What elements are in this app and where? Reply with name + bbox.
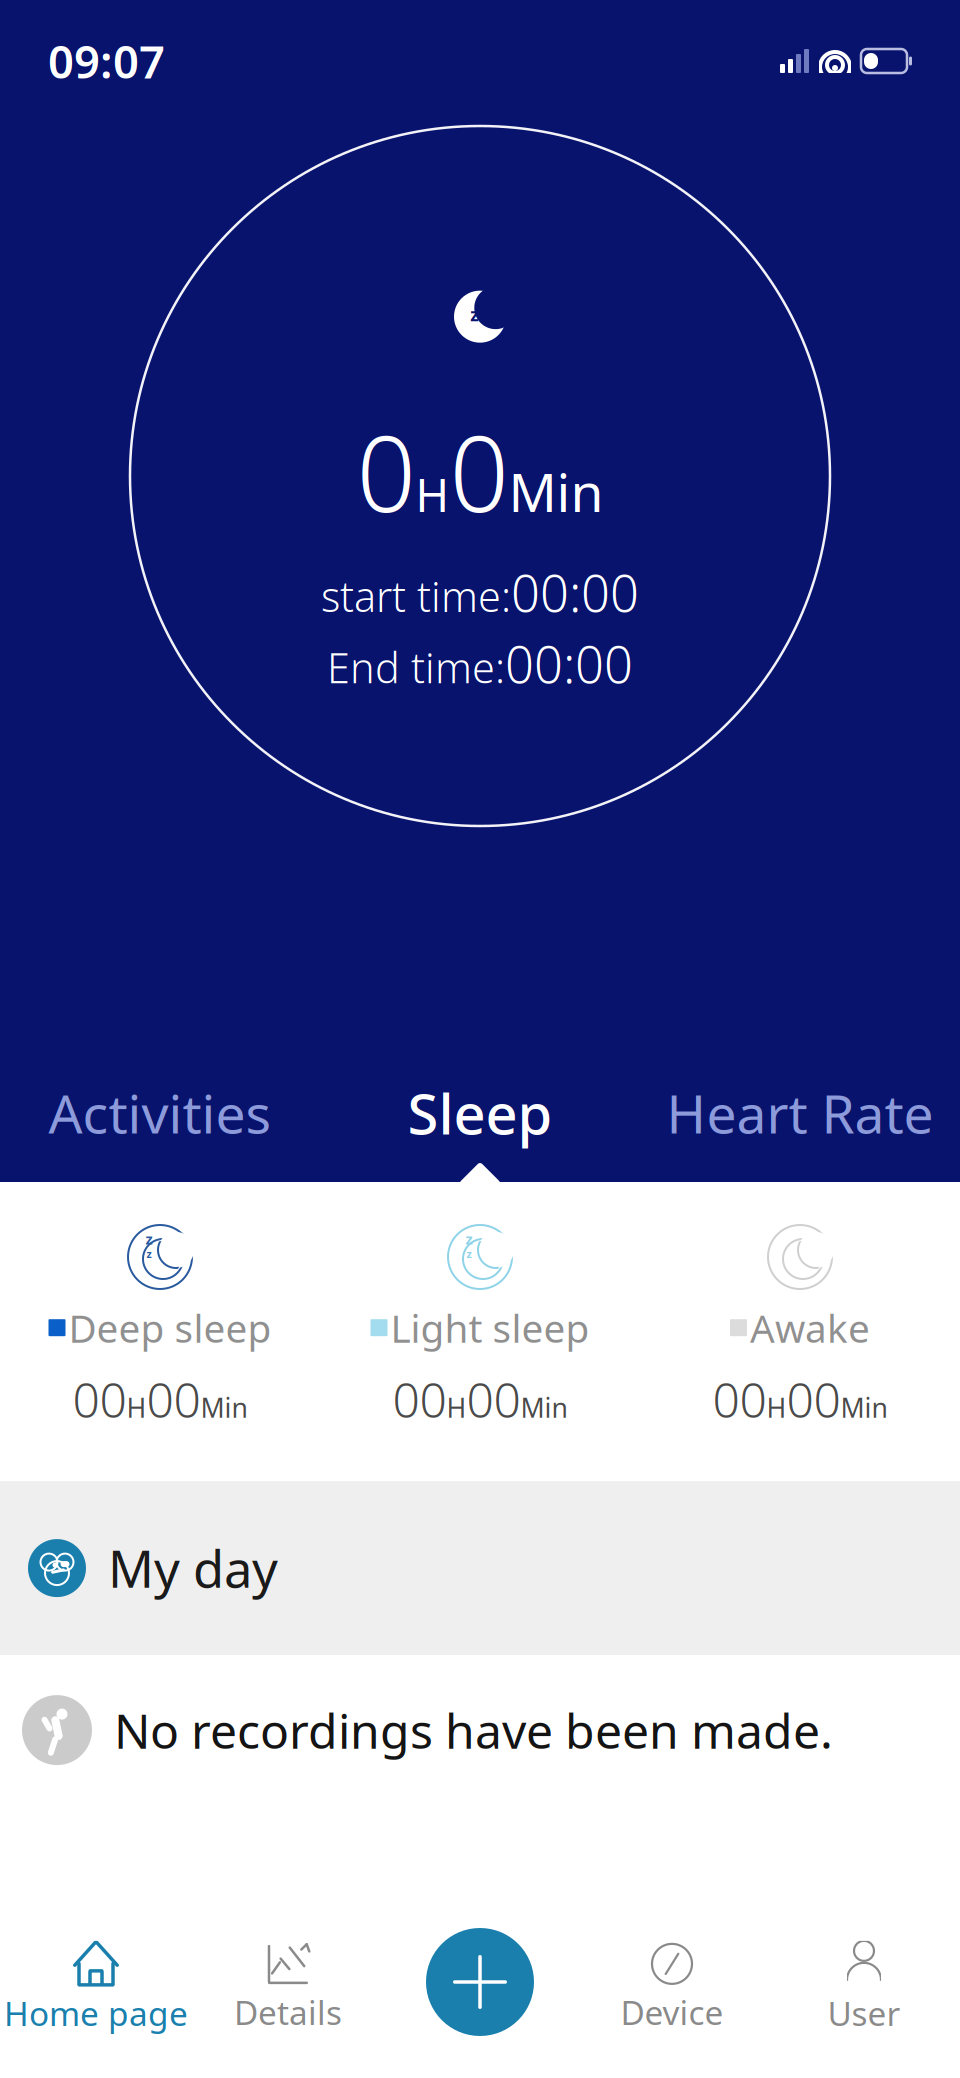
staticText: User xyxy=(827,1991,900,2035)
staticText: 00 xyxy=(72,1367,126,1431)
staticText: Min xyxy=(840,1390,887,1425)
staticText: z xyxy=(466,1247,471,1261)
button[interactable]: User xyxy=(768,1935,960,2041)
staticText: z xyxy=(145,1229,152,1249)
staticText: 00 xyxy=(786,1367,840,1431)
staticText: 00 xyxy=(466,1367,520,1431)
button[interactable]: Details xyxy=(192,1936,384,2040)
staticText: z xyxy=(470,303,479,326)
staticText: H xyxy=(415,464,449,525)
staticText: Details xyxy=(234,1990,342,2034)
staticText: 0 xyxy=(449,403,508,541)
staticText: End time: xyxy=(327,640,505,695)
staticText: start time: xyxy=(321,569,511,623)
button[interactable]: No recordings have been made. xyxy=(0,1655,960,1805)
button[interactable]: Heart Rate xyxy=(640,1067,960,1158)
staticText: No recordings have been made. xyxy=(114,1698,833,1762)
staticText: H xyxy=(766,1390,786,1425)
staticText: Activities xyxy=(48,1077,271,1148)
staticText: 0 xyxy=(356,403,415,541)
staticText: Heart Rate xyxy=(666,1077,933,1148)
staticText: z xyxy=(465,1229,472,1249)
staticText: 00 xyxy=(712,1367,766,1431)
staticText: 00:00 xyxy=(511,559,639,626)
staticText: Min xyxy=(200,1390,247,1425)
staticText: 00:00 xyxy=(505,630,633,697)
button[interactable]: Home page xyxy=(0,1935,192,2041)
button[interactable]: Activities xyxy=(0,1067,320,1158)
staticText: z xyxy=(146,1247,151,1261)
staticText: H xyxy=(446,1390,466,1425)
staticText: 09:07 xyxy=(48,31,165,91)
staticText: Device xyxy=(620,1990,723,2034)
button[interactable]: Add xyxy=(426,1928,534,2036)
staticText: Home page xyxy=(4,1991,188,2035)
staticText: 00 xyxy=(146,1367,200,1431)
button[interactable]: My day xyxy=(0,1481,960,1655)
staticText: H xyxy=(126,1390,146,1425)
staticText: Min xyxy=(508,456,603,527)
staticText: Light sleep xyxy=(390,1302,589,1353)
staticText: 00 xyxy=(392,1367,446,1431)
staticText: My day xyxy=(108,1534,278,1602)
button[interactable]: Sleep xyxy=(320,1066,640,1160)
staticText: Sleep xyxy=(407,1076,552,1150)
staticText: Deep sleep xyxy=(68,1302,271,1353)
button[interactable]: Device xyxy=(576,1936,768,2040)
staticText: Min xyxy=(520,1390,567,1425)
staticText: Awake xyxy=(750,1302,870,1353)
